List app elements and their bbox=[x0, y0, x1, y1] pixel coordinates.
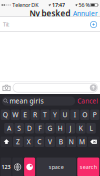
staticText: W bbox=[12, 110, 18, 119]
button[interactable]: Shift bbox=[1, 136, 12, 147]
staticText: C bbox=[37, 137, 41, 146]
staticText: S bbox=[17, 124, 21, 133]
button[interactable]: Add contact bbox=[89, 20, 98, 29]
staticText: P bbox=[93, 110, 97, 119]
staticText: space bbox=[49, 163, 64, 171]
button[interactable]: GIF keyboard bbox=[24, 157, 35, 176]
staticText: Cancel bbox=[77, 97, 98, 105]
staticText: Ny besked bbox=[29, 8, 70, 19]
staticText: N bbox=[69, 137, 74, 146]
staticText: X bbox=[27, 137, 31, 146]
staticText: F bbox=[38, 124, 41, 133]
staticText: R bbox=[33, 110, 37, 119]
button[interactable]: Annuler bbox=[71, 10, 100, 17]
staticText: D bbox=[27, 124, 32, 133]
staticText: Y bbox=[53, 110, 57, 119]
staticText: G bbox=[47, 124, 52, 133]
button[interactable]: search bbox=[77, 157, 99, 176]
staticText: 56 % bbox=[78, 1, 89, 9]
button[interactable]: Delete bbox=[88, 136, 99, 147]
staticText: B bbox=[59, 137, 63, 146]
staticText: Z bbox=[16, 137, 20, 146]
staticText: Q bbox=[3, 110, 8, 119]
staticText: O bbox=[82, 110, 87, 119]
button[interactable]: Cancel bbox=[77, 96, 98, 105]
staticText: L bbox=[90, 124, 93, 133]
button[interactable]: space bbox=[36, 157, 76, 176]
staticText: V bbox=[48, 137, 52, 146]
staticText: T bbox=[43, 110, 47, 119]
button[interactable]: Next keyboard bbox=[12, 157, 23, 176]
staticText: K bbox=[79, 124, 83, 133]
staticText: Annuler bbox=[73, 9, 98, 18]
staticText: U bbox=[62, 110, 67, 119]
staticText: H bbox=[58, 124, 63, 133]
staticText: mean girls bbox=[9, 97, 43, 105]
staticText: J bbox=[69, 124, 71, 133]
staticText: Til: bbox=[3, 21, 9, 28]
staticText: E bbox=[23, 110, 27, 119]
staticText: 123 bbox=[1, 163, 10, 171]
button[interactable]: Camera bbox=[2, 84, 10, 91]
staticText: search bbox=[80, 163, 97, 171]
staticText: Telenor DK bbox=[12, 1, 38, 9]
staticText: I bbox=[74, 110, 76, 119]
staticText: A bbox=[7, 124, 11, 133]
button[interactable]: 123 bbox=[1, 157, 11, 176]
staticText: 17:47 bbox=[52, 1, 65, 9]
staticText: M bbox=[79, 137, 85, 146]
